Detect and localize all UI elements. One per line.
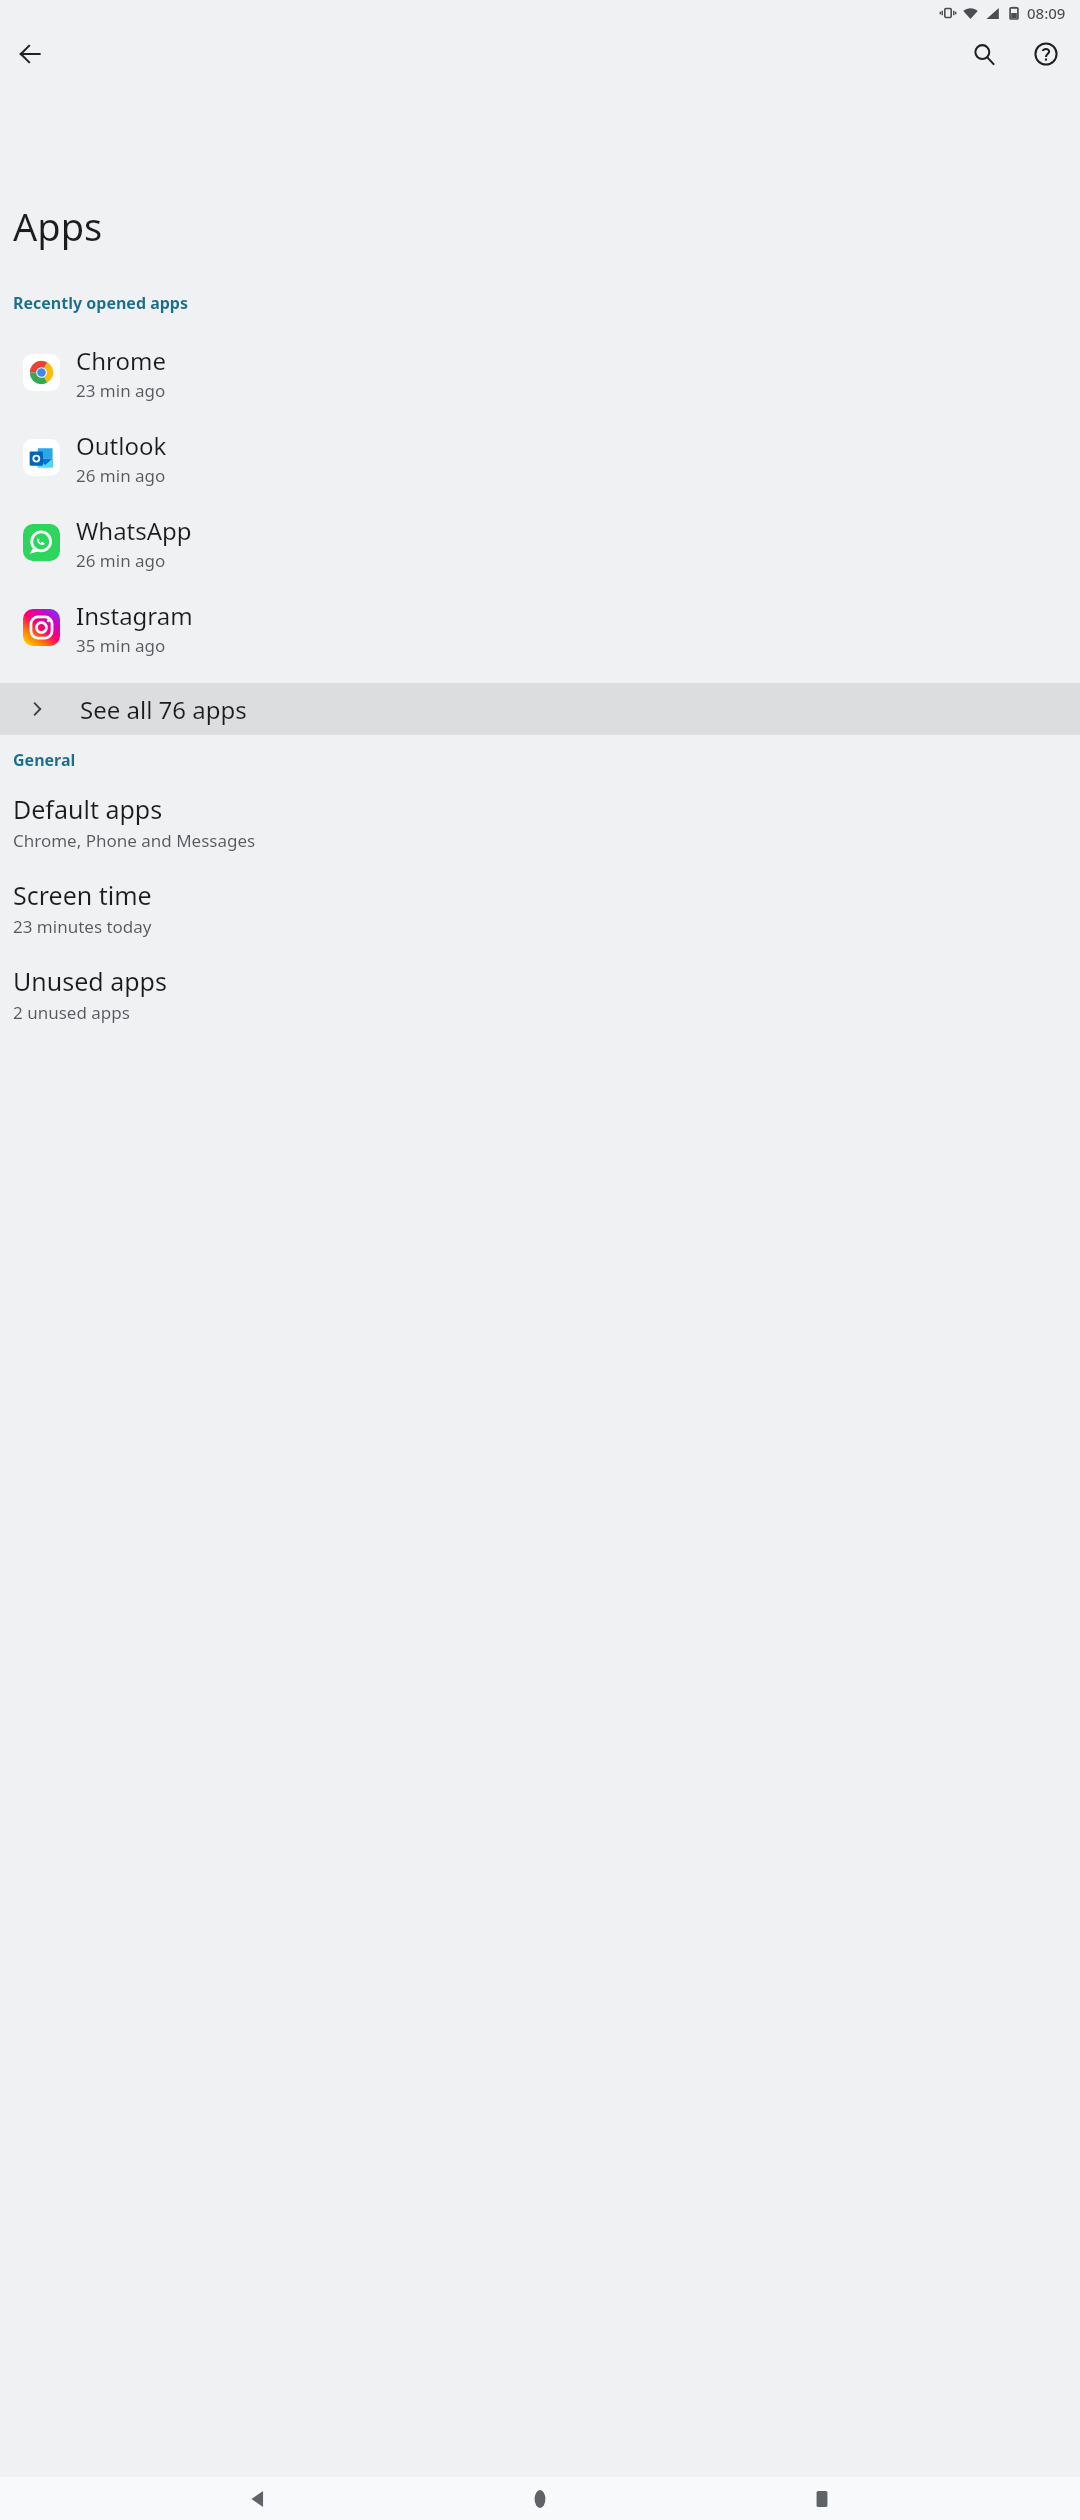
staticText: 2 unused apps <box>13 1001 130 1024</box>
button[interactable]: Instagram <box>0 585 1080 670</box>
staticText: 26 min ago <box>76 464 166 487</box>
staticText: Recently opened apps <box>13 292 188 314</box>
button[interactable]: Chrome <box>0 330 1080 415</box>
button[interactable]: Outlook <box>0 415 1080 500</box>
staticText: See all 76 apps <box>80 693 247 726</box>
staticText: Apps <box>13 200 103 252</box>
staticText: 26 min ago <box>76 549 166 572</box>
staticText: 23 minutes today <box>13 915 152 938</box>
button[interactable]: Default apps <box>0 779 1080 865</box>
button[interactable]: See all 76 apps <box>0 683 1080 735</box>
staticText: Screen time <box>13 878 152 912</box>
button[interactable]: Help <box>1022 30 1070 78</box>
staticText: 08:09 <box>1027 3 1066 23</box>
staticText: 35 min ago <box>76 634 166 657</box>
button[interactable]: Unused apps <box>0 951 1080 1037</box>
button[interactable]: WhatsApp <box>0 500 1080 585</box>
staticText: WhatsApp <box>76 514 192 547</box>
button[interactable]: Search <box>960 30 1008 78</box>
staticText: General <box>13 749 76 771</box>
staticText: Instagram <box>76 599 193 632</box>
button[interactable]: Back <box>234 2477 282 2520</box>
button[interactable]: Home <box>516 2477 564 2520</box>
staticText: Default apps <box>13 792 163 826</box>
button[interactable]: Back <box>6 30 54 78</box>
staticText: Unused apps <box>13 964 167 998</box>
staticText: Chrome, Phone and Messages <box>13 829 256 852</box>
staticText: 23 min ago <box>76 379 166 402</box>
button[interactable]: Screen time <box>0 865 1080 951</box>
staticText: Outlook <box>76 429 167 462</box>
button[interactable]: Recents <box>798 2477 846 2520</box>
staticText: Chrome <box>76 344 166 377</box>
